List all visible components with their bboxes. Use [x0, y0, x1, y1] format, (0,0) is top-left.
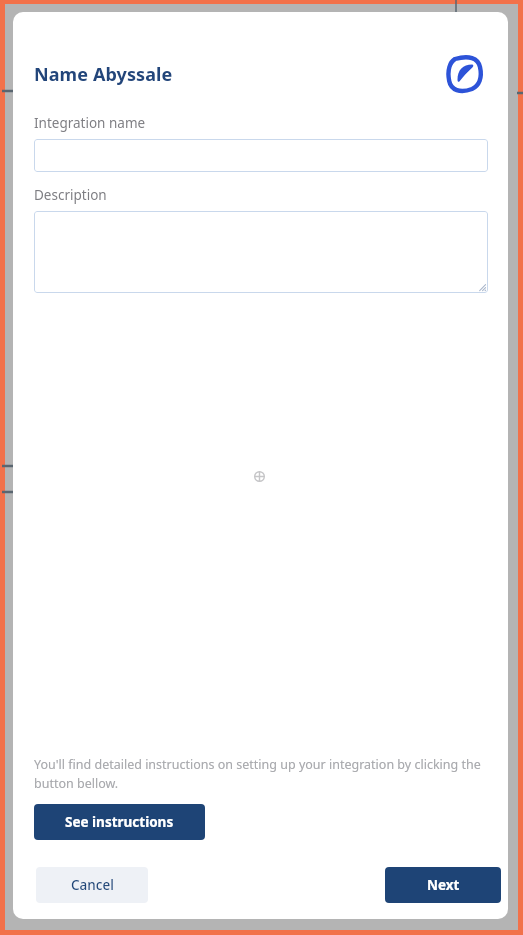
button[interactable]: See instructions: [34, 804, 205, 840]
button[interactable]: Next: [385, 867, 501, 903]
button[interactable]: Cancel: [36, 867, 148, 903]
staticText: Next: [427, 876, 460, 894]
button[interactable]: [34, 211, 488, 293]
staticText: Name Abyssale: [34, 62, 173, 87]
staticText: See instructions: [65, 813, 174, 831]
staticText: Cancel: [71, 876, 114, 894]
staticText: Description: [34, 186, 107, 204]
other: Abyssale logo: [445, 54, 485, 94]
staticText: Integration name: [34, 114, 146, 132]
button[interactable]: [34, 139, 488, 172]
staticText: You'll find detailed instructions on set…: [34, 756, 488, 792]
